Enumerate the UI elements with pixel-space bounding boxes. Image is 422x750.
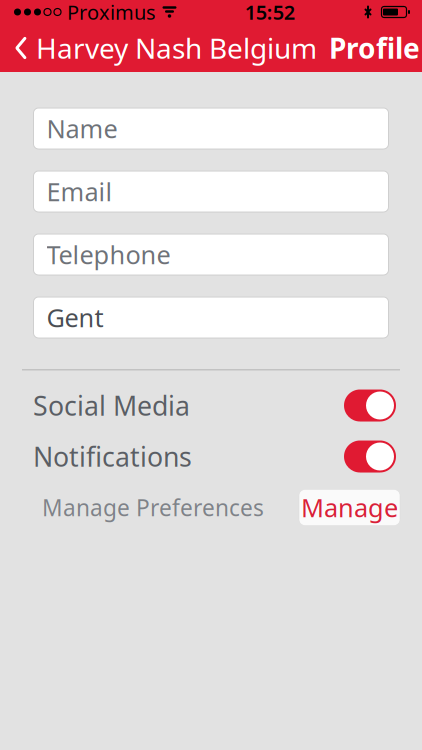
button[interactable]: Manage (299, 489, 400, 525)
staticText: 15:52 (245, 0, 295, 25)
staticText: Email (46, 175, 112, 208)
staticText: Notifications (33, 439, 192, 474)
staticText: Gent (46, 301, 103, 334)
staticText: Telephone (46, 238, 170, 271)
staticText: Social Media (33, 388, 190, 423)
button[interactable]: Notifications toggle, on (344, 440, 396, 472)
staticText: Manage (301, 491, 398, 524)
button[interactable]: Back to Harvey Nash Belgium (0, 24, 321, 72)
staticText: Profile (329, 29, 420, 67)
staticText: Harvey Nash Belgium (36, 29, 317, 67)
button[interactable]: Social Media toggle, on (344, 389, 396, 421)
staticText: Name (46, 112, 117, 145)
staticText: Manage Preferences (42, 492, 264, 522)
staticText: Proximus (67, 0, 156, 25)
